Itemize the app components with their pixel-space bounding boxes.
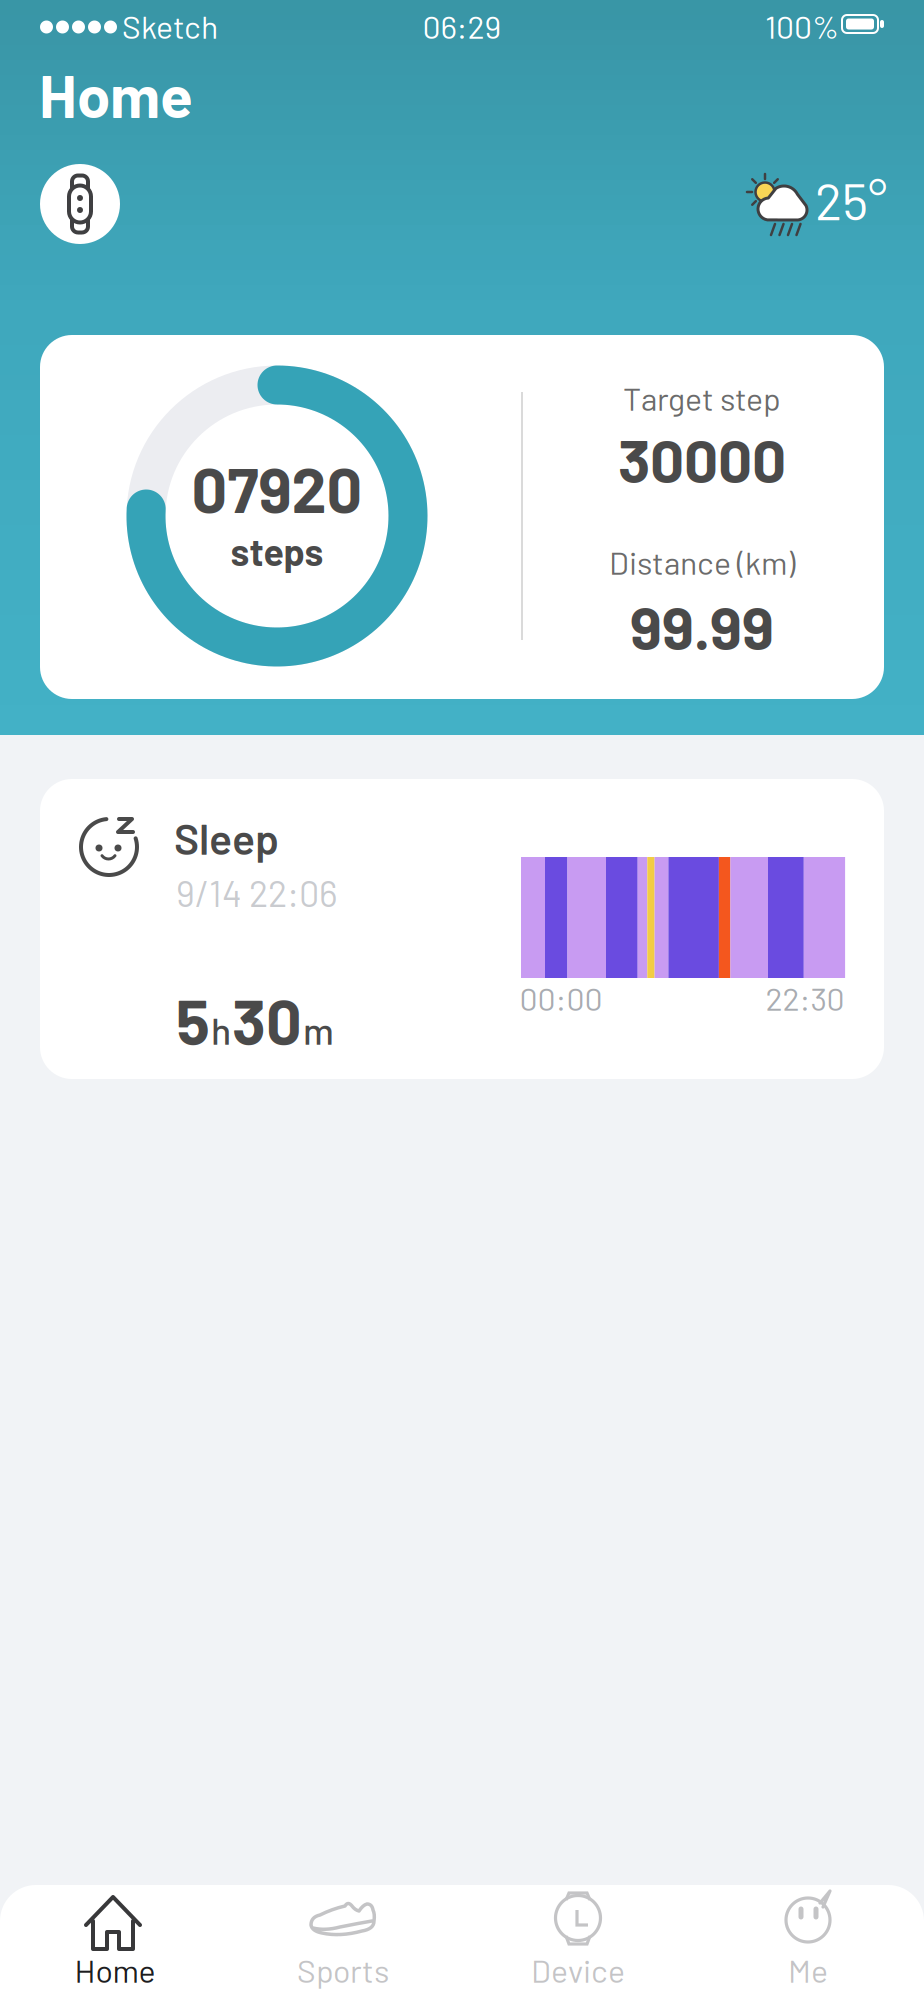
- staticText: h: [211, 1007, 231, 1052]
- staticText: 30: [232, 982, 302, 1057]
- button[interactable]: Sports: [0, 0, 924, 2000]
- button[interactable]: Device: [0, 0, 924, 2000]
- staticText: Sketch: [122, 7, 218, 45]
- staticText: Sleep: [174, 812, 279, 863]
- staticText: 00:00: [519, 979, 602, 1017]
- staticText: 25°: [815, 170, 887, 230]
- button[interactable]: Home: [0, 0, 924, 2000]
- staticText: Distance (km): [609, 543, 795, 581]
- button[interactable]: [40, 164, 120, 244]
- staticText: 30000: [618, 423, 786, 495]
- staticText: 99.99: [630, 590, 774, 662]
- staticText: 07920: [191, 450, 362, 526]
- staticText: Target step: [623, 379, 781, 417]
- button[interactable]: [40, 335, 884, 699]
- staticText: Home: [74, 1951, 155, 1989]
- staticText: Home: [39, 58, 193, 130]
- button[interactable]: [40, 779, 884, 1079]
- staticText: steps: [230, 529, 323, 573]
- button[interactable]: Me: [0, 0, 924, 2000]
- staticText: Me: [788, 1951, 828, 1989]
- staticText: Device: [531, 1951, 625, 1989]
- staticText: m: [303, 1007, 334, 1052]
- staticText: 06:29: [422, 7, 501, 45]
- staticText: Sports: [297, 1951, 389, 1989]
- staticText: 5: [176, 982, 210, 1057]
- staticText: 22:30: [765, 979, 844, 1017]
- staticText: 100%: [765, 7, 839, 45]
- staticText: 9/14 22:06: [176, 871, 338, 914]
